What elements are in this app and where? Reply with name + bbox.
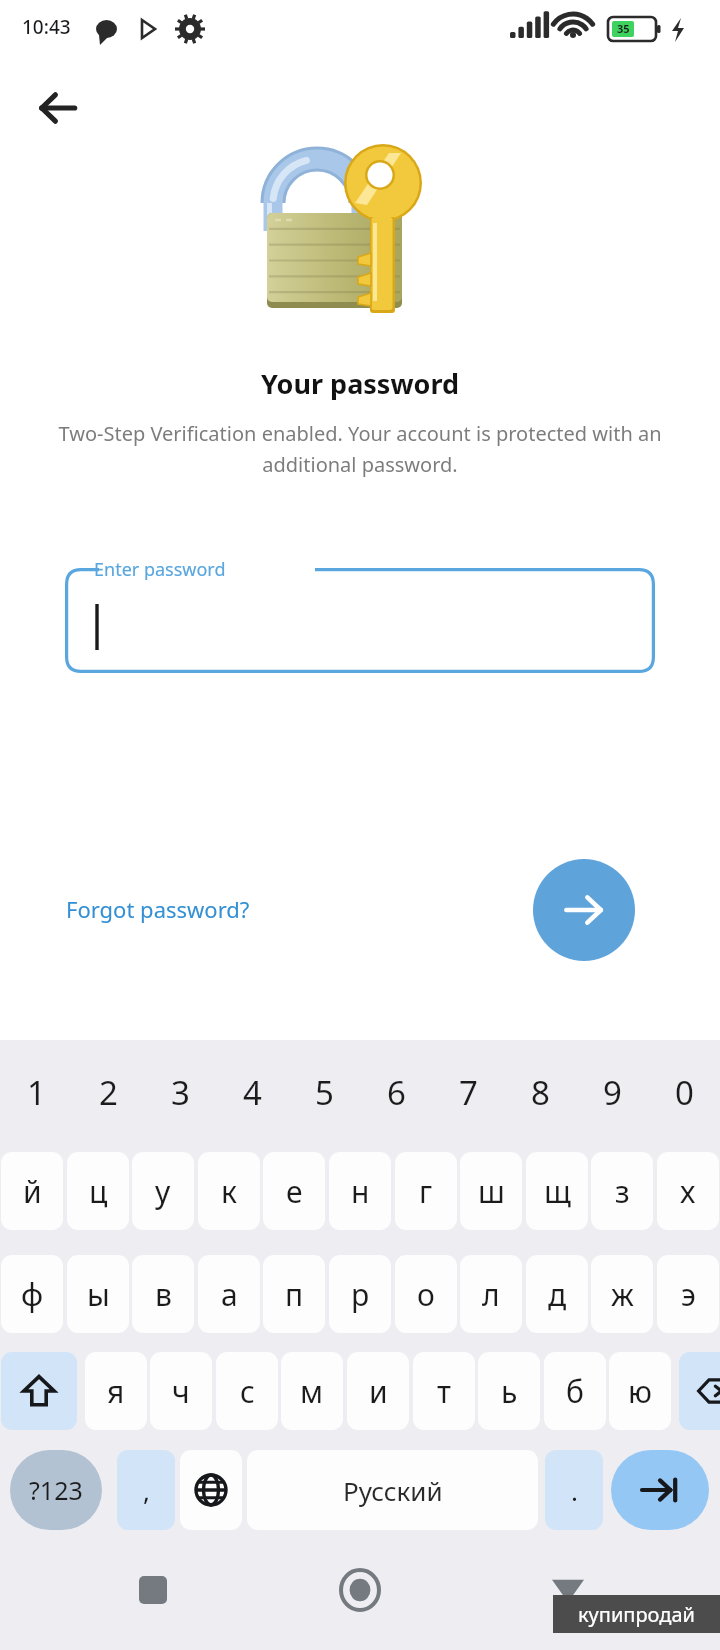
button[interactable]: п [263,1255,325,1333]
button[interactable]: Recents [98,1535,208,1645]
button[interactable]: г [395,1152,457,1230]
button[interactable]: Home [305,1535,415,1645]
button[interactable]: 2 [72,1058,144,1126]
button[interactable]: е [263,1152,325,1230]
staticText: 9 [603,1070,622,1115]
staticText: ы [87,1274,110,1315]
staticText: ч [172,1371,190,1412]
button[interactable]: р [329,1255,391,1333]
button[interactable]: 1 [0,1058,72,1126]
button[interactable]: 3 [144,1058,216,1126]
staticText: ю [628,1371,652,1412]
staticText: з [615,1171,630,1212]
button[interactable]: э [657,1255,719,1333]
button[interactable]: Русский [247,1450,538,1530]
staticText: р [351,1274,370,1315]
staticText: н [351,1171,370,1212]
staticText: у [155,1171,171,1212]
button[interactable]: , [117,1450,175,1530]
button[interactable]: Enter [611,1450,709,1530]
staticText: Enter password [94,557,226,582]
button[interactable]: Enter password [65,568,655,673]
button[interactable]: щ [526,1152,588,1230]
button[interactable]: й [1,1152,63,1230]
staticText: ф [21,1274,44,1315]
button[interactable]: о [395,1255,457,1333]
button[interactable]: Shift [1,1352,77,1430]
button[interactable]: м [281,1352,343,1430]
staticText: 35 [617,21,630,36]
button[interactable]: н [329,1152,391,1230]
staticText: е [286,1171,303,1212]
button[interactable]: з [591,1152,653,1230]
button[interactable]: в [132,1255,194,1333]
button[interactable]: Submit password [533,859,635,961]
staticText: Your password [261,365,459,402]
staticText: ш [478,1171,505,1212]
staticText: а [221,1274,238,1315]
staticText: п [285,1274,304,1315]
staticText: б [566,1371,584,1412]
staticText: о [417,1274,435,1315]
button[interactable]: л [460,1255,522,1333]
staticText: т [437,1371,451,1412]
staticText: ц [89,1171,108,1212]
button[interactable]: ?123 [10,1450,102,1530]
staticText: ?123 [29,1473,83,1507]
staticText: Русский [343,1473,443,1508]
staticText: к [221,1171,237,1212]
staticText: я [107,1371,125,1412]
button[interactable]: 5 [288,1058,360,1126]
staticText: л [482,1274,500,1315]
staticText: , [143,1473,150,1508]
button[interactable]: 4 [216,1058,288,1126]
button[interactable]: ы [67,1255,129,1333]
staticText: 8 [531,1070,550,1115]
staticText: щ [544,1171,571,1212]
button[interactable]: Backspace [679,1352,720,1430]
button[interactable]: Forgot password? [66,894,250,924]
button[interactable]: у [132,1152,194,1230]
button[interactable]: ю [609,1352,671,1430]
button[interactable]: х [657,1152,719,1230]
button[interactable]: с [216,1352,278,1430]
button[interactable]: а [198,1255,260,1333]
staticText: . [571,1473,578,1508]
button[interactable]: Back [22,72,94,144]
staticText: 10:43 [22,14,71,40]
staticText: Two-Step Verification enabled. Your acco… [58,420,662,477]
staticText: ь [501,1371,518,1412]
button[interactable]: ц [67,1152,129,1230]
staticText: 3 [171,1070,190,1115]
button[interactable]: и [347,1352,409,1430]
staticText: д [548,1274,567,1315]
staticText: 5 [315,1070,334,1115]
button[interactable]: я [85,1352,147,1430]
button[interactable]: Hide keyboard [513,1535,623,1645]
staticText: 4 [243,1070,262,1115]
button[interactable]: 6 [360,1058,432,1126]
staticText: в [155,1274,172,1315]
staticText: 7 [459,1070,478,1115]
button[interactable]: ь [478,1352,540,1430]
staticText: ж [611,1274,634,1315]
button[interactable]: ч [150,1352,212,1430]
button[interactable]: ф [1,1255,63,1333]
staticText: Forgot password? [66,894,250,924]
button[interactable]: 8 [504,1058,576,1126]
staticText: 1 [27,1070,46,1115]
button[interactable]: . [545,1450,603,1530]
button[interactable]: 0 [648,1058,720,1126]
button[interactable]: ш [460,1152,522,1230]
staticText: г [419,1171,433,1212]
button[interactable]: т [413,1352,475,1430]
button[interactable]: 7 [432,1058,504,1126]
staticText: х [680,1171,696,1212]
button[interactable]: б [544,1352,606,1430]
button[interactable]: 9 [576,1058,648,1126]
button[interactable]: Change language [180,1450,242,1530]
button[interactable]: к [198,1152,260,1230]
staticText: 2 [99,1070,118,1115]
button[interactable]: ж [591,1255,653,1333]
button[interactable]: д [526,1255,588,1333]
